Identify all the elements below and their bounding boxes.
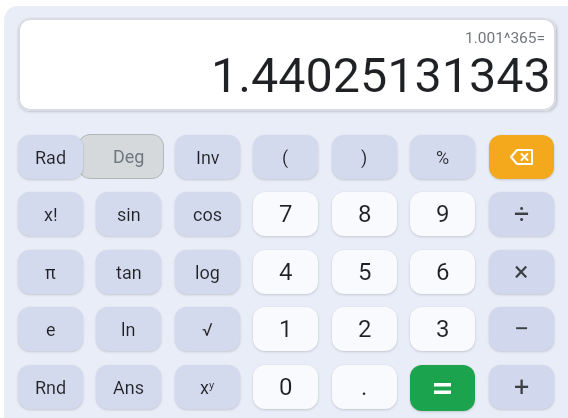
staticText: ( <box>282 147 289 168</box>
button[interactable]: Inv <box>175 135 240 179</box>
staticText: ÷ <box>514 198 530 230</box>
button[interactable]: ) <box>332 135 397 179</box>
button[interactable]: Ans <box>96 365 161 409</box>
button[interactable]: ÷ <box>489 192 554 236</box>
button[interactable]: sin <box>96 192 161 236</box>
button[interactable]: 5 <box>332 250 397 294</box>
staticText: 9 <box>436 200 450 228</box>
staticText: cos <box>193 204 222 225</box>
staticText: 0 <box>279 373 293 401</box>
button[interactable]: 1 <box>253 307 318 351</box>
button[interactable]: log <box>175 250 240 294</box>
button[interactable]: e <box>18 307 83 351</box>
staticText: log <box>195 262 220 283</box>
staticText: e <box>46 319 56 340</box>
staticText: tan <box>116 262 142 283</box>
button[interactable]: ln <box>96 307 161 351</box>
button[interactable]: 7 <box>253 192 318 236</box>
staticText: 6 <box>436 258 450 286</box>
staticText: + <box>514 371 530 403</box>
button[interactable]: Deg <box>78 134 164 179</box>
button[interactable]: √ <box>175 307 240 351</box>
staticText: xy <box>200 377 215 398</box>
button[interactable]: π <box>18 250 83 294</box>
staticText: . <box>361 373 368 401</box>
staticText: ) <box>361 147 368 168</box>
staticText: 1.001^365= <box>465 29 546 47</box>
staticText: % <box>436 147 450 168</box>
button[interactable]: Rnd <box>18 365 83 409</box>
button[interactable]: cos <box>175 192 240 236</box>
button[interactable]: xy <box>175 365 240 409</box>
staticText: − <box>514 313 530 345</box>
button[interactable]: % <box>410 135 475 179</box>
button[interactable]: tan <box>96 250 161 294</box>
button[interactable]: 8 <box>332 192 397 236</box>
button[interactable]: 4 <box>253 250 318 294</box>
staticText: 4 <box>279 258 293 286</box>
staticText: Inv <box>196 147 220 168</box>
button[interactable]: 6 <box>410 250 475 294</box>
button[interactable]: 9 <box>410 192 475 236</box>
staticText: Deg <box>113 146 145 167</box>
staticText: x! <box>44 204 58 225</box>
button[interactable]: . <box>332 365 397 409</box>
button[interactable]: 3 <box>410 307 475 351</box>
button[interactable]: 0 <box>253 365 318 409</box>
button[interactable]: 2 <box>332 307 397 351</box>
staticText: Rnd <box>35 377 67 398</box>
button[interactable]: Rad <box>18 135 83 179</box>
staticText: sin <box>117 204 141 225</box>
staticText: π <box>45 262 56 283</box>
staticText: 1 <box>279 315 293 343</box>
button[interactable]: + <box>489 365 554 409</box>
button[interactable] <box>410 365 475 411</box>
staticText: × <box>514 256 529 288</box>
button[interactable]: − <box>489 307 554 351</box>
staticText: 3 <box>436 315 450 343</box>
staticText: 1.44025131343 <box>211 47 551 104</box>
staticText: Rad <box>35 147 67 168</box>
staticText: √ <box>202 319 213 340</box>
button[interactable]: × <box>489 250 554 294</box>
staticText: 2 <box>358 315 372 343</box>
staticText: ln <box>121 319 136 340</box>
button[interactable]: x! <box>18 192 83 236</box>
staticText: 8 <box>358 200 372 228</box>
button[interactable] <box>489 135 554 179</box>
button[interactable]: ( <box>253 135 318 179</box>
staticText: 5 <box>358 258 372 286</box>
staticText: 7 <box>279 200 293 228</box>
staticText: Ans <box>113 377 144 398</box>
